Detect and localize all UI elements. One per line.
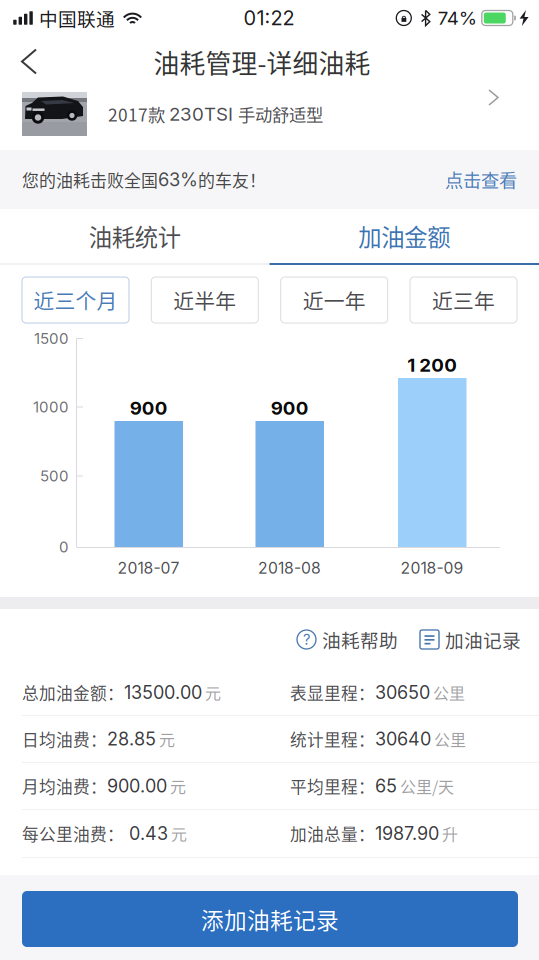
staticText: 30640 xyxy=(375,728,431,750)
staticText: 近三个月 xyxy=(33,285,117,315)
staticText: 1500 xyxy=(34,329,69,348)
staticText: 2018-08 xyxy=(258,558,321,577)
staticText: 加油金额 xyxy=(358,219,450,253)
staticText: 总加油金额： xyxy=(22,680,124,704)
staticText: 中国联通 xyxy=(39,4,115,31)
staticText: 近一年 xyxy=(303,285,366,315)
staticText: 升 xyxy=(442,822,458,845)
staticText: 0 xyxy=(59,538,69,556)
staticText: 0.43 xyxy=(124,823,168,844)
staticText: 近三年 xyxy=(432,285,495,315)
staticText: ? xyxy=(303,631,310,648)
staticText: 您的油耗击败全国 xyxy=(22,167,158,192)
staticText: 230TSI xyxy=(169,103,238,125)
staticText: 油耗管理-详细油耗 xyxy=(153,43,370,81)
staticText: 公里 xyxy=(434,727,466,751)
staticText: 元 xyxy=(159,727,175,751)
staticText: 74% xyxy=(438,7,477,29)
staticText: 油耗统计 xyxy=(89,219,181,253)
staticText: 公里 xyxy=(433,681,465,704)
staticText: 月均油费： xyxy=(22,774,107,798)
staticText: 500 xyxy=(40,467,69,485)
staticText: 900 xyxy=(271,397,309,419)
staticText: 30650 xyxy=(375,682,430,703)
staticText: 900 xyxy=(130,397,168,419)
staticText: 2018-07 xyxy=(117,558,179,577)
staticText: 手动舒适型 xyxy=(238,101,323,127)
button[interactable]: 添加油耗记录 xyxy=(22,891,518,947)
button[interactable]: 近三个月 xyxy=(22,277,129,323)
staticText: 表显里程： xyxy=(290,680,375,704)
staticText: 元 xyxy=(170,774,186,798)
staticText: 900.00 xyxy=(107,775,167,797)
staticText: 元 xyxy=(171,822,187,845)
staticText: 2018-09 xyxy=(400,558,463,577)
button[interactable]: 加油记录 xyxy=(420,626,521,653)
staticText: 2017款 xyxy=(108,101,169,127)
button[interactable]: 近三年 xyxy=(410,277,517,323)
staticText: 日均油费： xyxy=(22,727,107,751)
staticText: 1000 xyxy=(33,398,69,416)
button[interactable]: 近一年 xyxy=(281,277,388,323)
staticText: 65 xyxy=(375,775,397,797)
staticText: 加油总量： xyxy=(290,821,375,845)
staticText: 13500.00 xyxy=(124,682,202,703)
staticText: 元 xyxy=(205,681,221,704)
staticText: 平均里程： xyxy=(290,774,375,798)
button[interactable]: 近半年 xyxy=(151,277,258,323)
button[interactable]: 油耗统计 xyxy=(0,209,269,263)
staticText: 1 xyxy=(407,354,415,376)
staticText: 的车友！ xyxy=(198,167,266,192)
button[interactable]: 加油金额 xyxy=(269,209,539,263)
staticText: 统计里程： xyxy=(290,727,375,751)
staticText: 01:22 xyxy=(243,6,294,30)
button[interactable]: 返回 xyxy=(4,35,54,88)
staticText: 添加油耗记录 xyxy=(201,903,339,935)
staticText: 200 xyxy=(419,354,457,376)
staticText: 每公里油费： xyxy=(22,821,124,845)
staticText: 近半年 xyxy=(173,285,236,315)
button[interactable]: 点击查看 xyxy=(445,166,517,193)
button[interactable]: ? xyxy=(297,626,398,653)
staticText: 28.85 xyxy=(107,728,156,750)
staticText: 公里/天 xyxy=(400,774,454,798)
staticText: 1987.90 xyxy=(375,823,439,844)
staticText: 加油记录 xyxy=(445,626,521,653)
button[interactable]: 2017款 xyxy=(0,89,539,150)
staticText: 油耗帮助 xyxy=(322,626,398,653)
staticText: 点击查看 xyxy=(445,166,517,193)
staticText: 63% xyxy=(158,168,198,190)
